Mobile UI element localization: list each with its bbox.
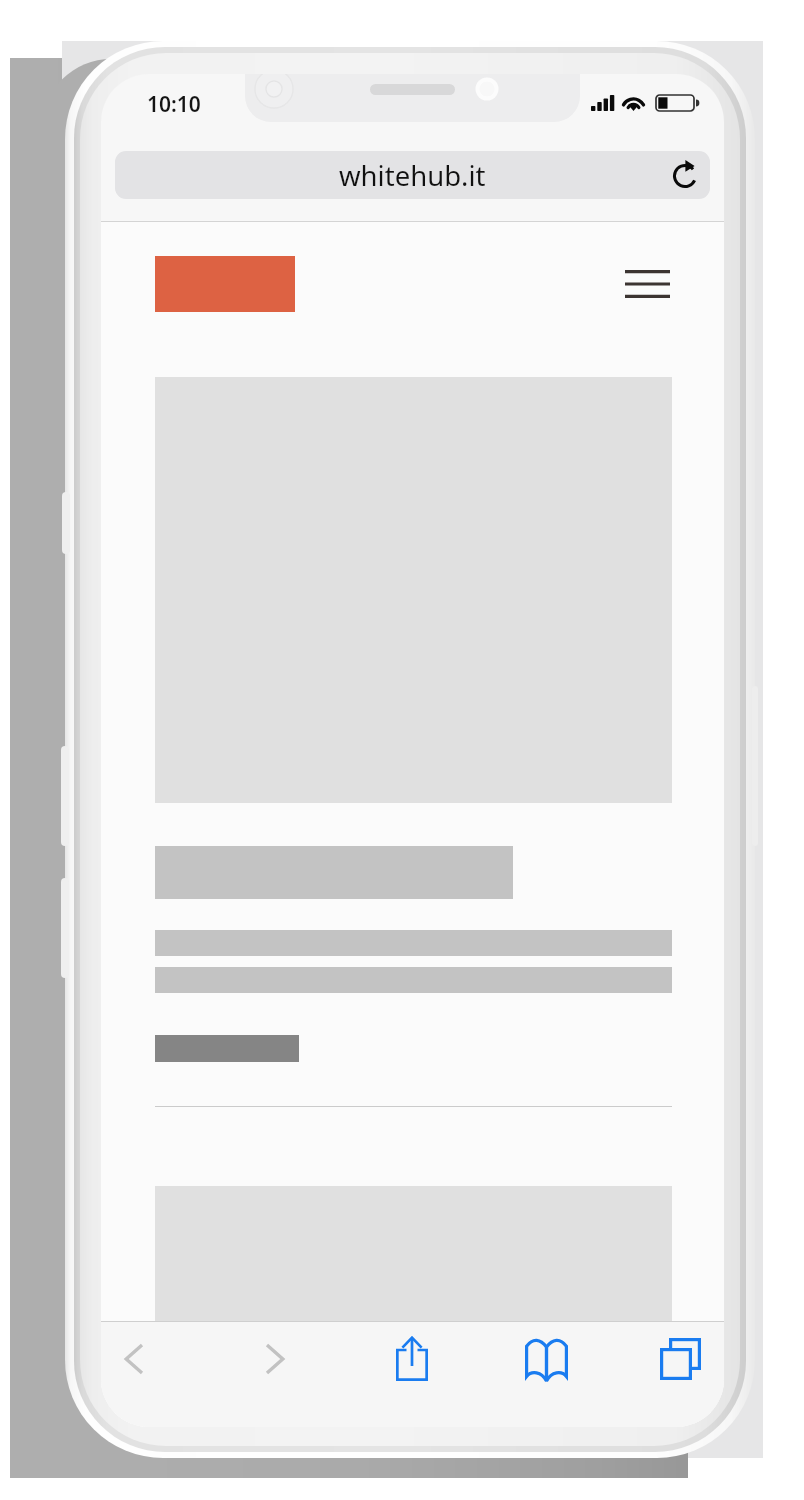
button[interactable]: Forward — [225, 1322, 325, 1396]
button[interactable]: whitehub.it — [115, 151, 710, 199]
button[interactable]: Bookmarks — [496, 1322, 596, 1396]
staticText: 10:10 — [147, 90, 201, 119]
button[interactable]: Reload — [667, 157, 703, 193]
staticText: whitehub.it — [339, 157, 486, 194]
button[interactable]: Share — [362, 1322, 462, 1396]
button[interactable]: Menu — [615, 257, 680, 311]
button[interactable]: Back — [101, 1322, 184, 1396]
button[interactable]: Tabs — [630, 1322, 724, 1396]
